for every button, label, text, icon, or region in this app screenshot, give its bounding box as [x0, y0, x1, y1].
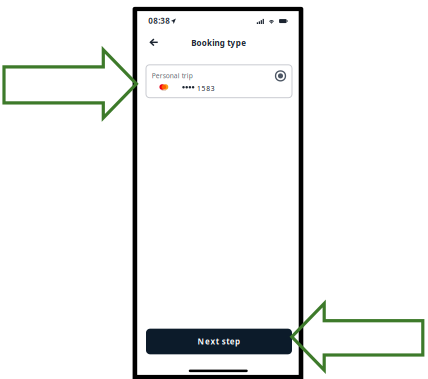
staticText: 08:38: [148, 15, 170, 26]
button[interactable]: Next step: [146, 329, 292, 354]
staticText: Next step: [197, 336, 240, 347]
button[interactable]: Back: [144, 32, 164, 52]
staticText: 1583: [197, 84, 215, 93]
button[interactable]: Personal trip: [146, 65, 292, 98]
staticText: Booking type: [191, 38, 246, 48]
staticText: Personal trip: [152, 71, 193, 80]
